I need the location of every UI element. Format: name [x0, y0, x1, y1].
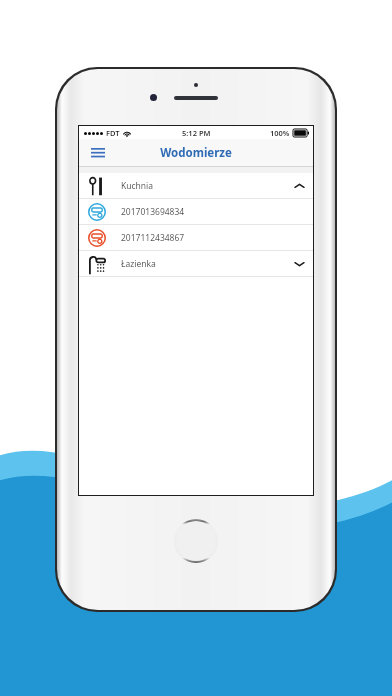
staticText: FDT	[106, 128, 120, 138]
button[interactable]: Menu	[87, 142, 109, 164]
button[interactable]: 2017112434867	[79, 225, 313, 250]
staticText: Wodomierze	[160, 145, 232, 161]
staticText: 2017013694834	[121, 206, 185, 218]
button[interactable]: 2017013694834	[79, 199, 313, 224]
button[interactable]: Kuchnia	[79, 173, 313, 198]
other: Home	[176, 521, 216, 561]
staticText: 100%	[270, 128, 290, 138]
button[interactable]: Łazienka	[79, 251, 313, 276]
staticText: Kuchnia	[121, 180, 154, 192]
staticText: Łazienka	[121, 258, 156, 270]
staticText: 2017112434867	[121, 232, 185, 244]
staticText: 5:12 PM	[182, 128, 211, 138]
